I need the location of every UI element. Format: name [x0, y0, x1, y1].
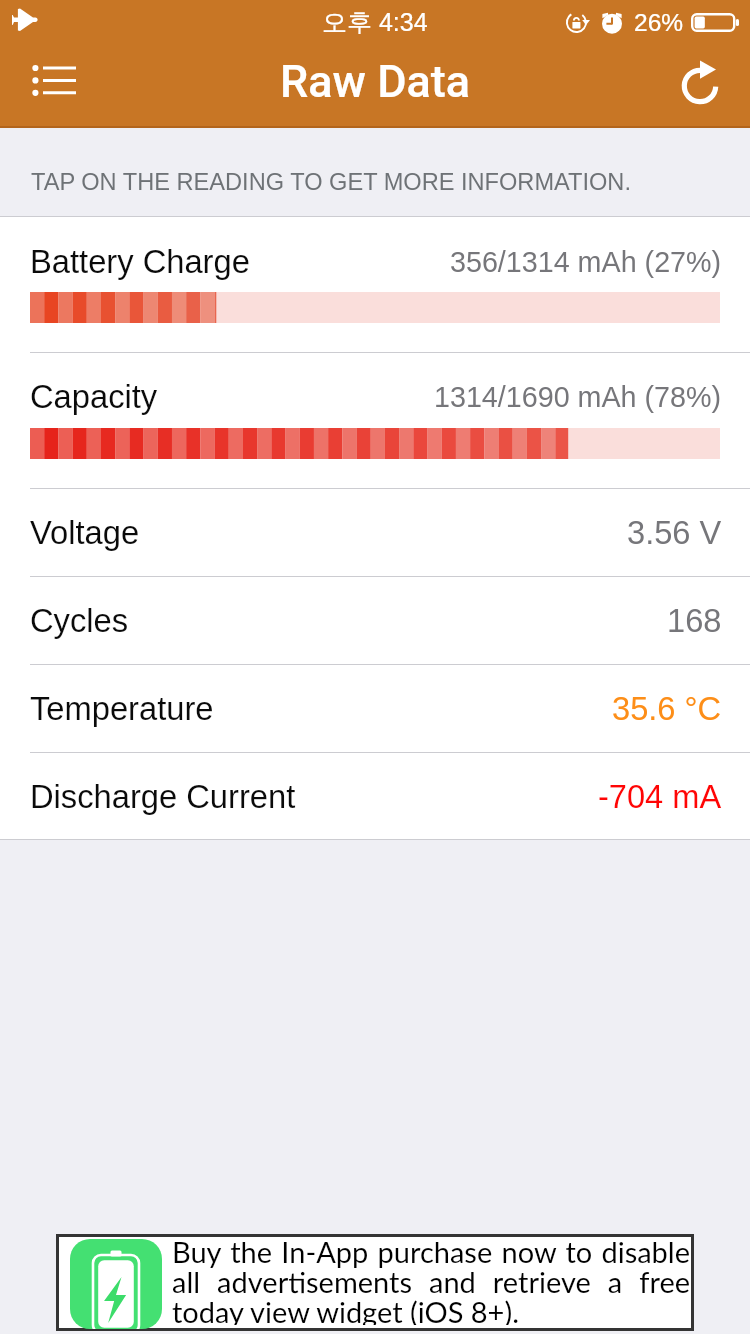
staticText: Battery Charge	[30, 243, 250, 280]
staticText: -704 mA	[598, 778, 722, 814]
button[interactable]: Temperature	[0, 664, 750, 752]
staticText: 35.6 °C	[612, 690, 722, 726]
staticText: 1314/1690 mAh (78%)	[434, 381, 722, 413]
button[interactable]: Buy the In-App purchase now to disable a…	[59, 1237, 691, 1328]
staticText: 26%	[634, 9, 684, 36]
staticText: Raw Data	[280, 55, 471, 108]
staticText: Discharge Current	[30, 778, 296, 815]
staticText: Temperature	[30, 690, 214, 727]
button[interactable]: Capacity	[0, 352, 750, 488]
staticText: Buy the In-App purchase now to disable a…	[172, 1234, 690, 1325]
button[interactable]: Cycles	[0, 576, 750, 664]
staticText: TAP ON THE READING TO GET MORE INFORMATI…	[31, 169, 631, 195]
staticText: Voltage	[30, 514, 140, 551]
staticText: Capacity	[30, 378, 158, 415]
button[interactable]: Discharge Current	[0, 752, 750, 840]
staticText: 168	[667, 602, 722, 638]
staticText: Cycles	[30, 602, 129, 639]
staticText: 3.56 V	[627, 514, 722, 550]
staticText: 오후 4:34	[322, 7, 428, 38]
button[interactable]: Voltage	[0, 488, 750, 576]
button[interactable]: Menu	[0, 44, 88, 128]
staticText: 356/1314 mAh (27%)	[450, 246, 722, 278]
button[interactable]: Refresh	[666, 44, 750, 128]
button[interactable]: Battery Charge	[0, 217, 750, 352]
